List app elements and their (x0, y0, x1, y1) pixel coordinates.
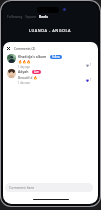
button[interactable]: Adyah (7, 69, 92, 84)
button[interactable]: Comment here (5, 183, 93, 192)
staticText: 1 (90, 78, 92, 82)
button[interactable]: Reels (39, 14, 48, 19)
staticText: 1 day ago (18, 81, 30, 84)
staticText: Following (7, 14, 23, 19)
staticText: Follow (52, 55, 60, 59)
button[interactable]: Live (32, 70, 41, 74)
staticText: Khadidja's album (18, 54, 47, 59)
staticText: 🔥🔥🔥 (18, 60, 31, 64)
staticText: Adyah (18, 69, 29, 74)
staticText: Comment here (9, 185, 35, 190)
button[interactable]: Square (25, 14, 37, 19)
staticText: LUANDA - ANGOLA (29, 28, 72, 33)
button[interactable]: Like (86, 78, 92, 82)
staticText: Reels (39, 14, 48, 19)
staticText: 1 (90, 63, 92, 67)
staticText: Beautiful 🔥 (18, 75, 38, 80)
staticText: Comments (2) (14, 47, 36, 51)
staticText: 1 day ago (18, 65, 30, 69)
button[interactable]: Follow (50, 55, 62, 59)
button[interactable]: Close (6, 46, 11, 51)
staticText: Square (25, 14, 37, 19)
button[interactable]: Like (86, 63, 92, 67)
button[interactable]: Following (7, 14, 23, 19)
staticText: Live (34, 70, 39, 74)
button[interactable]: Khadidja's album (7, 54, 92, 69)
